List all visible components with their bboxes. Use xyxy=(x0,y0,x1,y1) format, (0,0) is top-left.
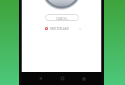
button[interactable]: CANCEL xyxy=(45,14,79,21)
button[interactable]: Back xyxy=(34,72,46,85)
staticText: CANCEL xyxy=(56,17,68,21)
button[interactable]: SWITZERLAND xyxy=(45,25,81,32)
staticText: SWITZERLAND xyxy=(50,27,69,31)
button[interactable]: Recents xyxy=(78,72,90,85)
button[interactable]: Home xyxy=(56,72,68,85)
